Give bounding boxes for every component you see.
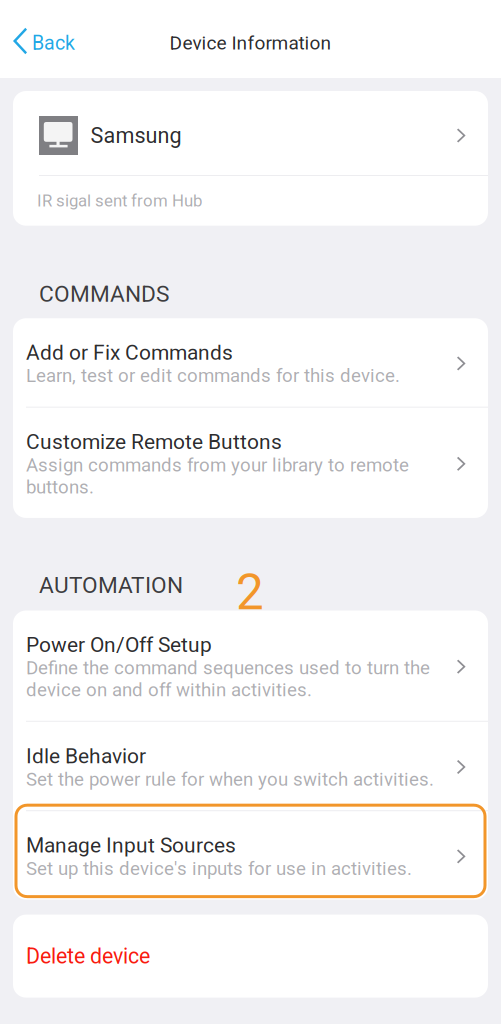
staticText: Back <box>32 31 75 54</box>
staticText: Set up this device's inputs for use in a… <box>26 858 412 880</box>
staticText: Power On/Off Setup <box>26 632 212 657</box>
staticText: Samsung <box>90 123 181 148</box>
button[interactable]: Delete device <box>13 915 488 998</box>
staticText: Assign commands from your library to rem… <box>26 454 409 498</box>
button[interactable]: Samsung <box>13 91 488 175</box>
staticText: Delete device <box>26 944 150 969</box>
staticText: Learn, test or edit commands for this de… <box>26 365 400 387</box>
staticText: Device Information <box>169 32 331 54</box>
button[interactable]: Customize Remote Buttons <box>13 408 488 518</box>
staticText: Idle Behavior <box>26 744 146 768</box>
staticText: AUTOMATION <box>39 572 183 598</box>
staticText: Define the command sequences used to tur… <box>26 657 430 701</box>
button[interactable]: Add or Fix Commands <box>13 318 488 407</box>
staticText: Manage Input Sources <box>26 833 236 858</box>
staticText: Add or Fix Commands <box>26 340 233 365</box>
button[interactable]: Power On/Off Setup <box>13 610 488 721</box>
staticText: Customize Remote Buttons <box>26 430 282 454</box>
staticText: COMMANDS <box>39 281 169 307</box>
staticText: IR sigal sent from Hub <box>37 191 202 211</box>
staticText: 2 <box>236 563 264 621</box>
button[interactable]: Back <box>0 14 89 63</box>
staticText: Set the power rule for when you switch a… <box>26 768 434 790</box>
button[interactable]: Manage Input Sources <box>13 811 488 900</box>
button[interactable]: Idle Behavior <box>13 722 488 810</box>
